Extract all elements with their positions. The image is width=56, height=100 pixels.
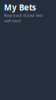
- staticText: with ease!: [4, 18, 21, 23]
- staticText: My Bets: [4, 2, 36, 13]
- staticText: Keep track of your bets: [4, 13, 43, 18]
